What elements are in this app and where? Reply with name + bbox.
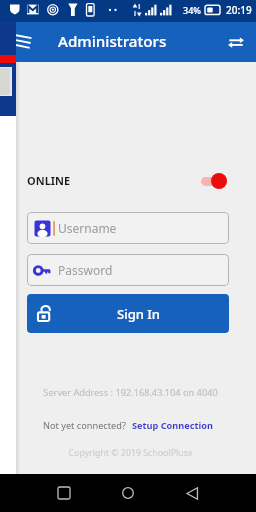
button[interactable]: Recent apps (47, 476, 81, 510)
staticText: Server Address : 192.168.43.104 on 4040 (25, 386, 236, 399)
staticText: Copyright © 2019 SchoolPlusx (25, 447, 236, 459)
staticText: 20:19 (226, 3, 252, 17)
button[interactable]: Back (175, 476, 209, 510)
staticText: Setup Connection (132, 419, 213, 432)
button[interactable]: Switch server (216, 22, 256, 62)
button[interactable]: Online toggle (198, 169, 232, 193)
staticText: Username (58, 220, 117, 236)
staticText: 34% (183, 4, 201, 16)
staticText: Password (58, 262, 113, 278)
staticText: Administrators (58, 31, 167, 52)
button[interactable]: Open navigation drawer (4, 22, 44, 62)
button[interactable]: Home (111, 476, 145, 510)
staticText: ONLINE (27, 173, 71, 188)
button[interactable]: Setup Connection (132, 419, 213, 432)
button[interactable]: Sign In (27, 294, 229, 333)
staticText: Sign In (117, 305, 161, 323)
button[interactable]: Username (27, 212, 229, 244)
staticText: Not yet connected? (43, 419, 126, 432)
button[interactable]: Password (27, 254, 229, 286)
